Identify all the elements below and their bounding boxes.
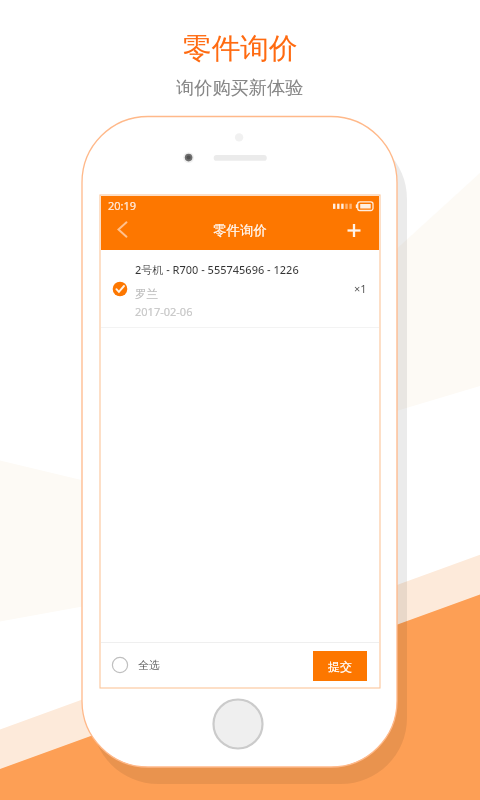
staticText: 20:19 <box>108 198 137 213</box>
staticText: ×1 <box>354 281 367 296</box>
staticText: 罗兰 <box>135 287 158 301</box>
staticText: 零件询价 <box>183 30 298 66</box>
button[interactable]: 全选 <box>101 649 171 681</box>
staticText: 2017-02-06 <box>135 304 193 319</box>
staticText: 询价购买新体验 <box>176 76 304 99</box>
button[interactable]: Add <box>345 216 379 250</box>
staticText: 全选 <box>138 658 160 672</box>
staticText: 零件询价 <box>213 222 267 239</box>
staticText: 2号机 - R700 - 555745696 - 1226 <box>135 262 299 277</box>
staticText: 提交 <box>328 659 352 674</box>
button[interactable]: 提交 <box>313 651 367 681</box>
button[interactable]: Back <box>101 215 137 250</box>
button[interactable]: 2号机 - R700 - 555745696 - 1226 <box>101 250 379 327</box>
